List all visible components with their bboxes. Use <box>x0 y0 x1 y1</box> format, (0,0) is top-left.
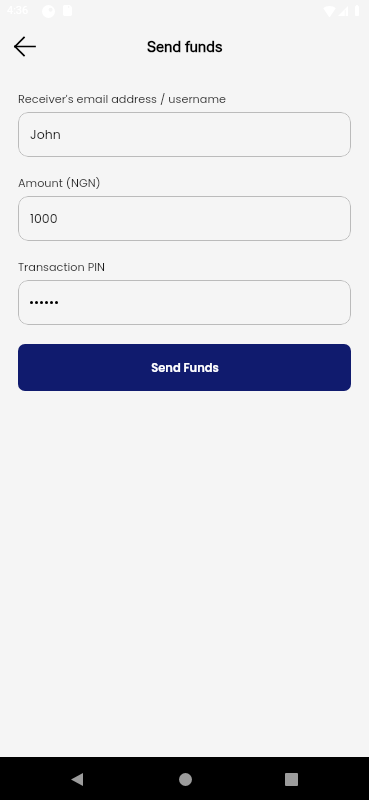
button[interactable]: Send Funds <box>18 344 351 391</box>
button[interactable]: Back <box>57 759 97 799</box>
staticText: Send Funds <box>151 360 219 376</box>
button[interactable]: Recents <box>271 759 311 799</box>
staticText: Transaction PIN <box>18 259 105 275</box>
button[interactable]: 1000 <box>18 196 351 241</box>
staticText: John <box>30 126 61 143</box>
button[interactable]: Back <box>7 28 43 64</box>
staticText: 1000 <box>30 210 58 227</box>
button[interactable]: Home <box>165 759 205 799</box>
staticText: Send funds <box>147 38 223 56</box>
staticText: Amount (NGN) <box>18 175 101 191</box>
button[interactable] <box>18 280 351 325</box>
staticText: Receiver's email address / username <box>18 91 226 107</box>
staticText: 4:36 <box>7 4 29 17</box>
button[interactable]: John <box>18 112 351 157</box>
